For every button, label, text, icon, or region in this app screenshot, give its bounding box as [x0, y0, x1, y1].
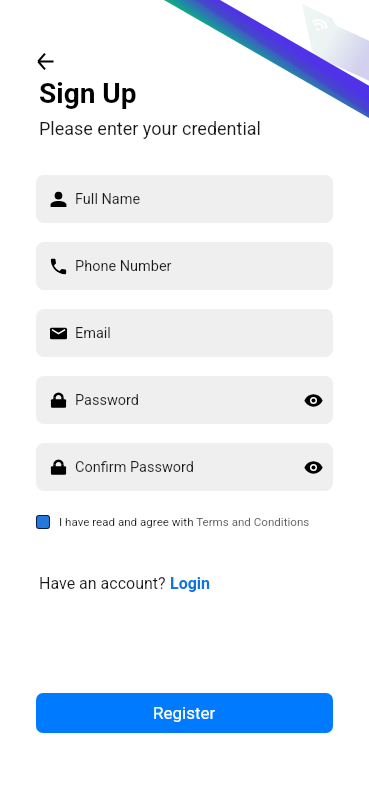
staticText: Phone Number: [75, 258, 172, 275]
button[interactable]: Register: [36, 693, 333, 733]
button[interactable]: Full Name: [36, 175, 333, 223]
staticText: Have an account?: [39, 574, 170, 593]
staticText: I have read and agree with Terms and Con…: [59, 515, 310, 529]
button[interactable]: Back: [29, 45, 62, 78]
button[interactable]: I have read and agree with Terms and Con…: [36, 515, 310, 529]
staticText: Email: [75, 325, 111, 342]
button[interactable]: Show password: [296, 450, 330, 484]
staticText: Register: [153, 703, 216, 723]
staticText: Please enter your credential: [39, 118, 261, 139]
staticText: Sign Up: [39, 77, 137, 110]
staticText: Full Name: [75, 191, 141, 208]
staticText: Confirm Password: [75, 459, 195, 476]
button[interactable]: Password: [36, 376, 333, 424]
button[interactable]: Phone Number: [36, 242, 333, 290]
staticText: Password: [75, 392, 140, 409]
button[interactable]: Login: [170, 574, 211, 593]
button[interactable]: Email: [36, 309, 333, 357]
button[interactable]: Confirm Password: [36, 443, 333, 491]
button[interactable]: Show password: [296, 383, 330, 417]
